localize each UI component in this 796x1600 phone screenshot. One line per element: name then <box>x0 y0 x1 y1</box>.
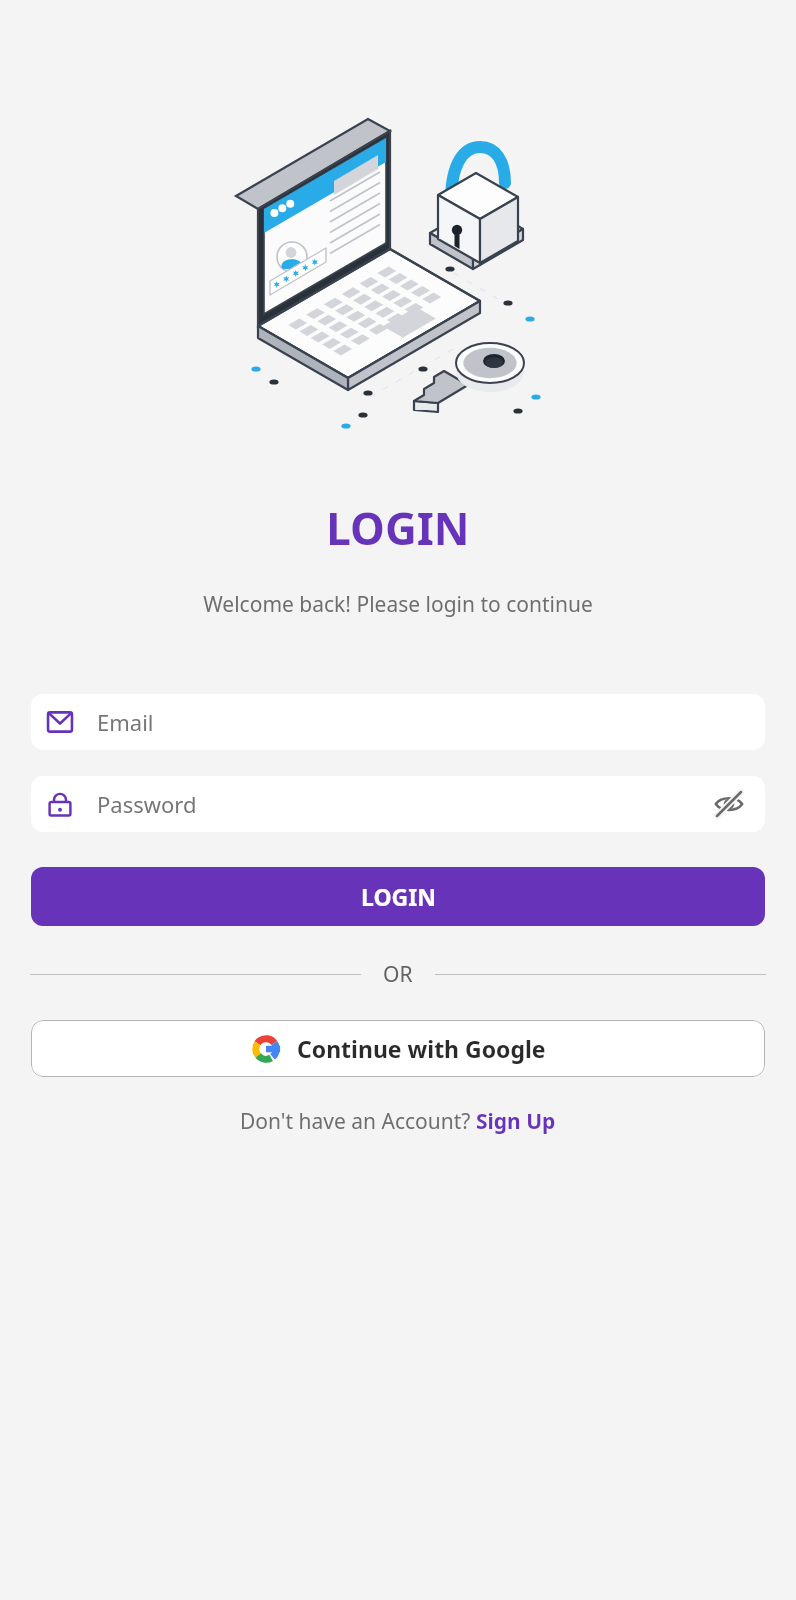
button[interactable]: Continue with Google <box>31 1020 765 1077</box>
staticText: Sign Up <box>476 1107 556 1136</box>
staticText: LOGIN <box>326 498 470 558</box>
staticText: Welcome back! Please login to continue <box>203 590 593 619</box>
button[interactable]: Email <box>31 694 765 750</box>
staticText: Email <box>97 707 154 737</box>
staticText: Don't have an Account? <box>240 1107 476 1136</box>
button[interactable]: Password <box>31 776 765 832</box>
staticText: OR <box>383 960 413 989</box>
staticText: LOGIN <box>361 881 436 912</box>
staticText: Continue with Google <box>297 1033 546 1064</box>
button[interactable]: LOGIN <box>31 867 765 926</box>
button[interactable]: Toggle password visibility <box>709 784 749 824</box>
button[interactable]: Sign Up <box>476 1107 556 1136</box>
staticText: Password <box>97 789 709 819</box>
